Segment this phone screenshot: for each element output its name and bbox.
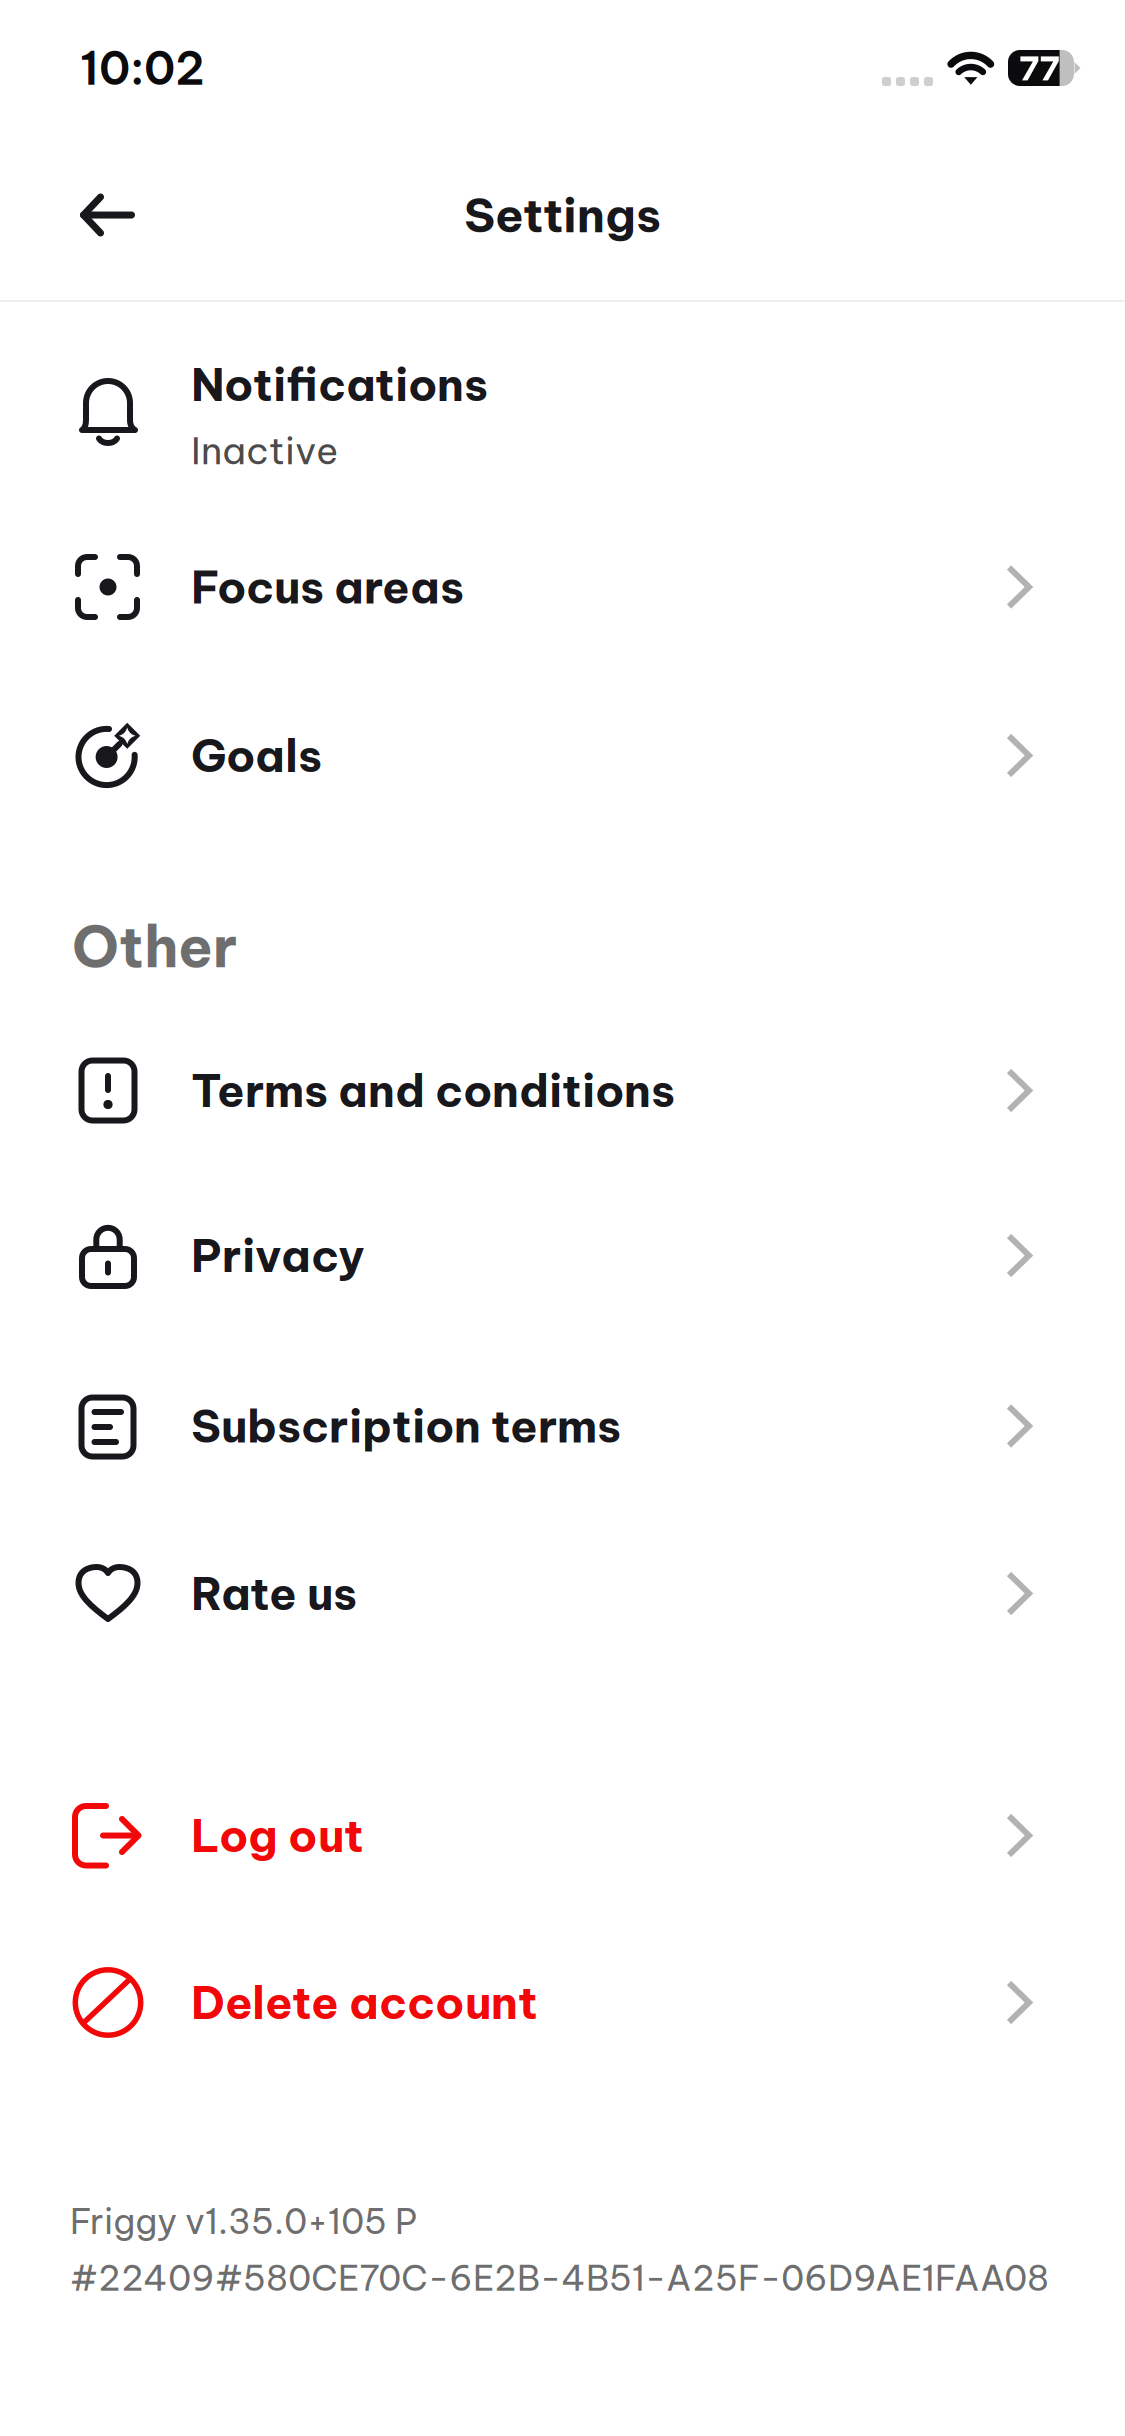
staticText: Other (72, 911, 237, 982)
button[interactable]: Delete account (0, 1919, 1125, 2086)
button[interactable]: Focus areas (0, 501, 1125, 673)
staticText: Focus areas (191, 559, 464, 615)
staticText: Delete account (191, 1974, 538, 2031)
staticText: Settings (464, 185, 661, 244)
staticText: Terms and conditions (191, 1062, 675, 1119)
staticText: Privacy (191, 1227, 365, 1284)
button[interactable]: Notifications (0, 323, 1125, 501)
button[interactable]: Rate us (0, 1513, 1125, 1674)
staticText: Subscription terms (191, 1398, 621, 1454)
staticText: Goals (191, 727, 322, 784)
button[interactable]: Goals (0, 673, 1125, 838)
button[interactable]: Back (72, 179, 144, 251)
staticText: Inactive (191, 427, 338, 474)
staticText: Friggy v1.35.0+105 P (70, 2199, 417, 2243)
staticText: 10:02 (80, 39, 205, 97)
staticText: Notifications (191, 356, 488, 413)
button[interactable]: Privacy (0, 1172, 1125, 1339)
button[interactable]: Log out (0, 1752, 1125, 1919)
staticText: Log out (191, 1807, 364, 1864)
button[interactable]: Subscription terms (0, 1339, 1125, 1513)
button[interactable]: Terms and conditions (0, 1009, 1125, 1172)
staticText: Rate us (191, 1565, 357, 1622)
staticText: #22409#580CE70C-6E2B-4B51-A25F-06D9AE1FA… (70, 2256, 1049, 2300)
